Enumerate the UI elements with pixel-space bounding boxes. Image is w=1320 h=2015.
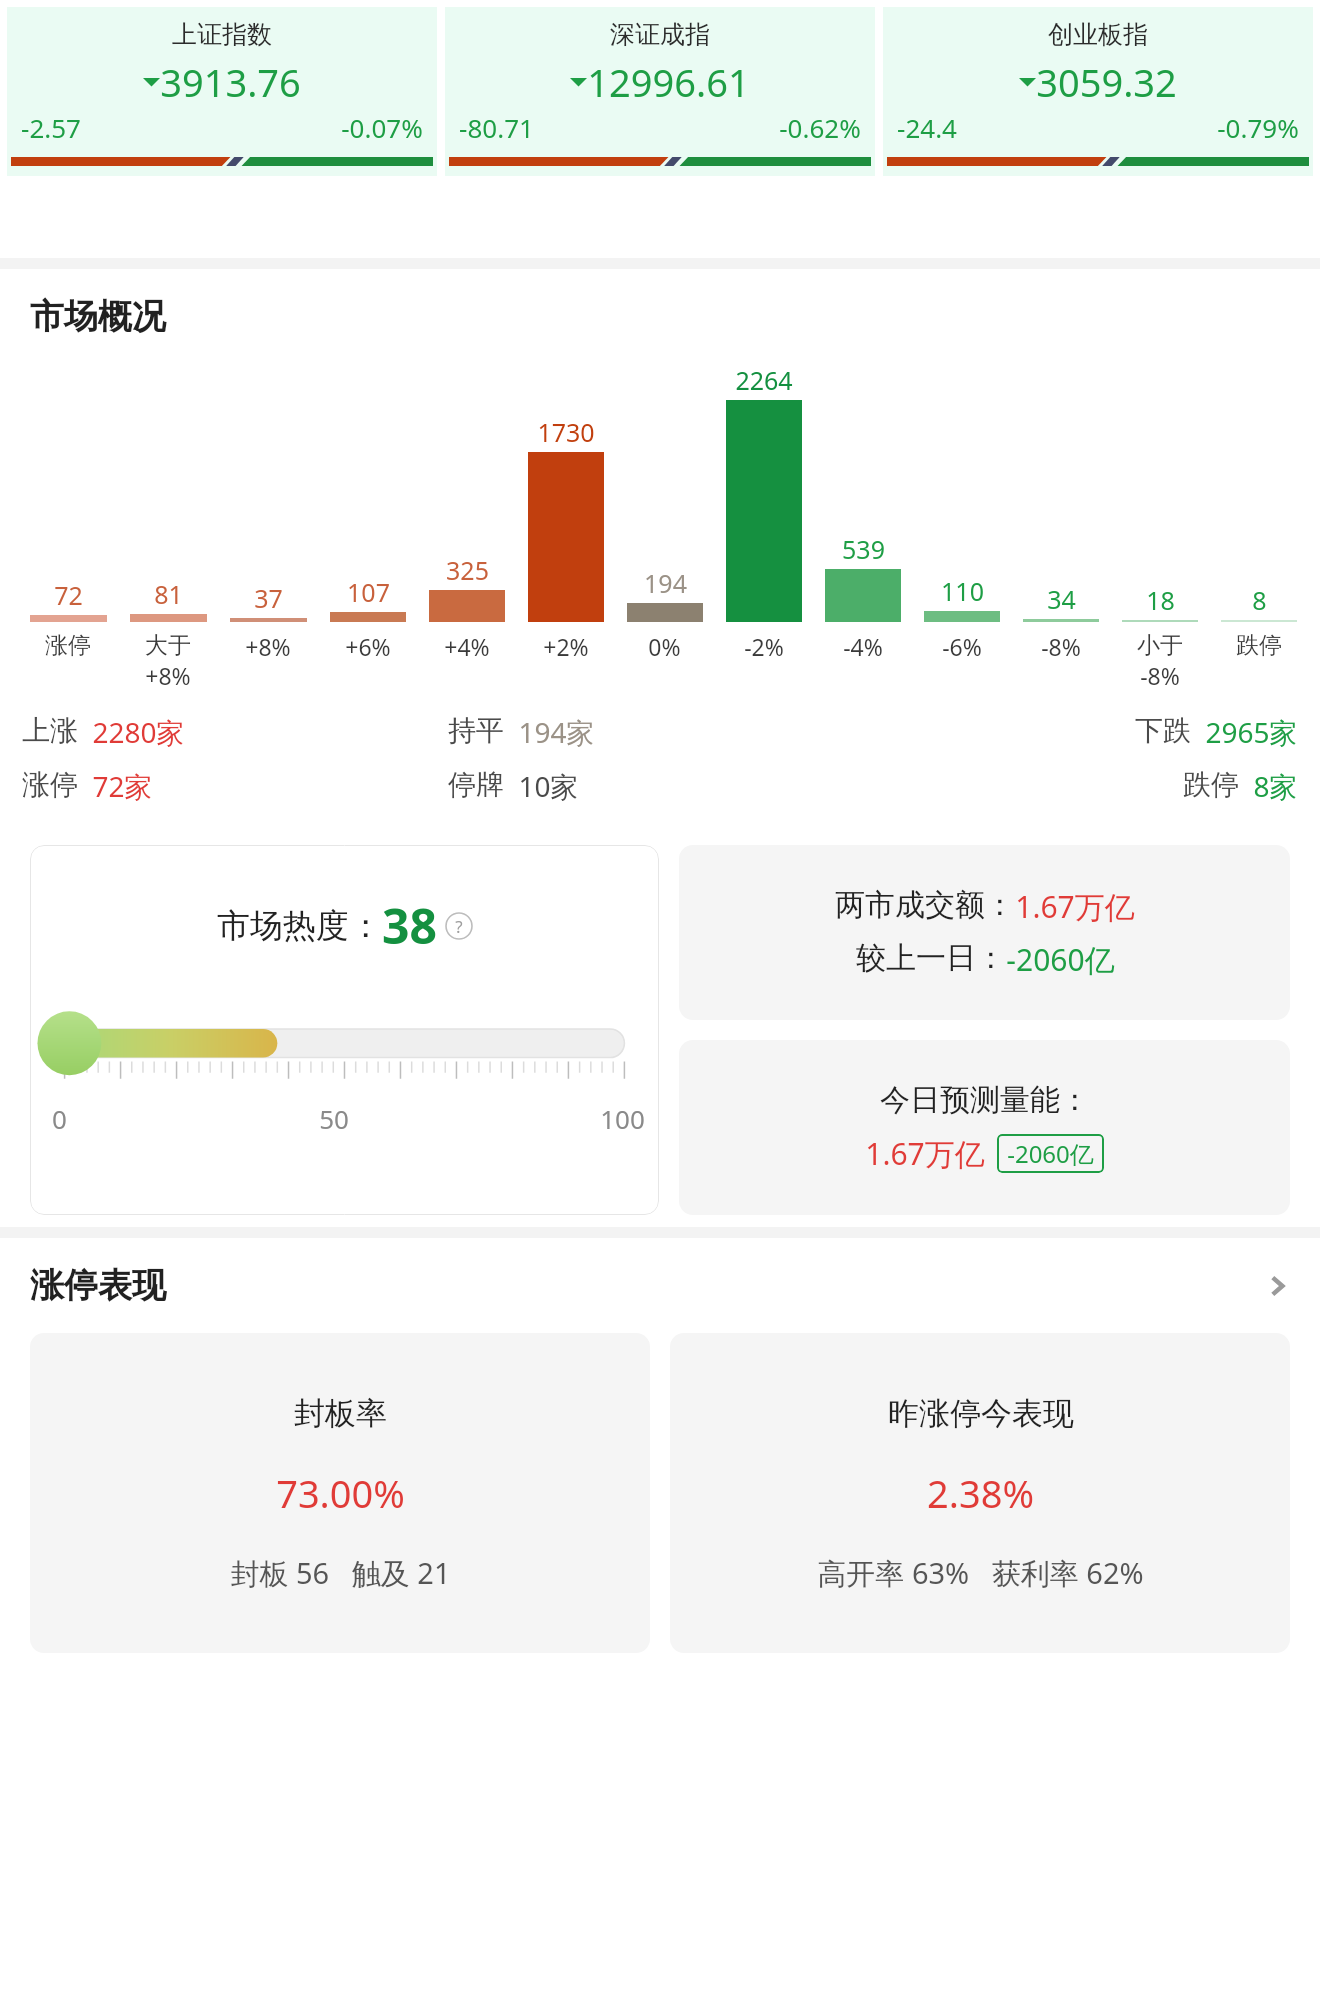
staticText: 38 xyxy=(382,893,437,958)
staticText: +2% xyxy=(543,631,589,662)
button[interactable]: 市场热度： xyxy=(30,845,659,1215)
staticText: +8% xyxy=(145,660,191,691)
button[interactable]: 深证成指 xyxy=(445,7,875,176)
staticText: 194家 xyxy=(518,713,595,751)
other: 更多 xyxy=(1262,1271,1292,1301)
staticText: 110 xyxy=(941,574,984,608)
staticText: 3913.76 xyxy=(160,56,301,108)
staticText: 市场概况 xyxy=(30,295,166,338)
staticText: 高开率 63% 获利率 62% xyxy=(817,1553,1144,1593)
staticText: 3059.32 xyxy=(1036,56,1177,108)
staticText: 194 xyxy=(644,566,687,600)
staticText: -2060亿 xyxy=(1006,939,1115,980)
staticText: -8% xyxy=(1041,631,1081,662)
button[interactable]: 两市成交额： xyxy=(679,845,1290,1020)
staticText: 上证指数 xyxy=(172,19,272,50)
staticText: 81 xyxy=(154,577,183,611)
staticText: 2280家 xyxy=(92,713,185,751)
staticText: 8家 xyxy=(1253,767,1298,805)
staticText: 107 xyxy=(347,575,390,609)
staticText: 1.67万亿 xyxy=(1015,886,1135,927)
staticText: 停牌 xyxy=(448,767,504,802)
staticText: 两市成交额： xyxy=(835,886,1015,924)
staticText: 37 xyxy=(254,581,283,615)
staticText: 跌停 xyxy=(1236,631,1282,660)
staticText: 小于 xyxy=(1137,631,1183,660)
staticText: 封板 56 触及 21 xyxy=(230,1553,451,1593)
staticText: 创业板指 xyxy=(1048,19,1148,50)
staticText: -2% xyxy=(744,631,784,662)
staticText: 18 xyxy=(1146,583,1175,617)
staticText: 涨停 xyxy=(45,631,91,660)
button[interactable]: 上证指数 xyxy=(7,7,437,176)
staticText: 跌停 xyxy=(1183,767,1239,802)
staticText: +4% xyxy=(444,631,490,662)
staticText: 持平 xyxy=(448,713,504,748)
staticText: 昨涨停今表现 xyxy=(888,1394,1074,1433)
button[interactable]: 封板率 xyxy=(30,1333,650,1653)
staticText: 0% xyxy=(648,631,681,662)
staticText: 72家 xyxy=(92,767,153,805)
staticText: 2264 xyxy=(735,363,793,397)
staticText: 2965家 xyxy=(1205,713,1298,751)
staticText: 较上一日： xyxy=(856,939,1006,977)
button[interactable]: 说明 xyxy=(445,912,473,940)
staticText: 封板率 xyxy=(294,1394,387,1433)
staticText: +6% xyxy=(345,631,391,662)
button[interactable]: 昨涨停今表现 xyxy=(670,1333,1290,1653)
staticText: 539 xyxy=(842,532,885,566)
staticText: 12996.61 xyxy=(587,56,750,108)
staticText: -0.79% xyxy=(1217,110,1299,145)
staticText: 34 xyxy=(1047,582,1076,616)
staticText: 市场热度： xyxy=(217,905,382,947)
staticText: 2.38% xyxy=(927,1467,1034,1519)
staticText: 50 xyxy=(319,1101,349,1136)
staticText: 1730 xyxy=(537,415,595,449)
staticText: 涨停表现 xyxy=(30,1264,166,1307)
button[interactable]: 涨停表现 xyxy=(0,1264,1320,1307)
staticText: -4% xyxy=(843,631,883,662)
staticText: -6% xyxy=(942,631,982,662)
staticText: ? xyxy=(455,915,463,938)
staticText: +8% xyxy=(245,631,291,662)
staticText: -0.07% xyxy=(341,110,423,145)
staticText: 10家 xyxy=(518,767,579,805)
staticText: 上涨 xyxy=(22,713,78,748)
staticText: 今日预测量能： xyxy=(880,1081,1090,1119)
staticText: 大于 xyxy=(145,631,191,660)
staticText: 325 xyxy=(446,553,489,587)
staticText: -8% xyxy=(1140,660,1180,691)
staticText: 72 xyxy=(54,578,83,612)
staticText: -2.57 xyxy=(21,110,81,145)
staticText: 73.00% xyxy=(276,1467,405,1519)
staticText: -0.62% xyxy=(779,110,861,145)
staticText: 涨停 xyxy=(22,767,78,802)
staticText: -2060亿 xyxy=(1007,1137,1094,1170)
button[interactable]: 今日预测量能： xyxy=(679,1040,1290,1215)
staticText: 100 xyxy=(600,1101,645,1136)
staticText: 0 xyxy=(52,1101,67,1136)
staticText: 8 xyxy=(1252,583,1267,617)
staticText: 1.67万亿 xyxy=(865,1133,985,1174)
button[interactable]: 创业板指 xyxy=(883,7,1313,176)
staticText: -80.71 xyxy=(459,110,534,145)
staticText: -24.4 xyxy=(897,110,957,145)
staticText: 深证成指 xyxy=(610,19,710,50)
staticText: 下跌 xyxy=(1135,713,1191,748)
